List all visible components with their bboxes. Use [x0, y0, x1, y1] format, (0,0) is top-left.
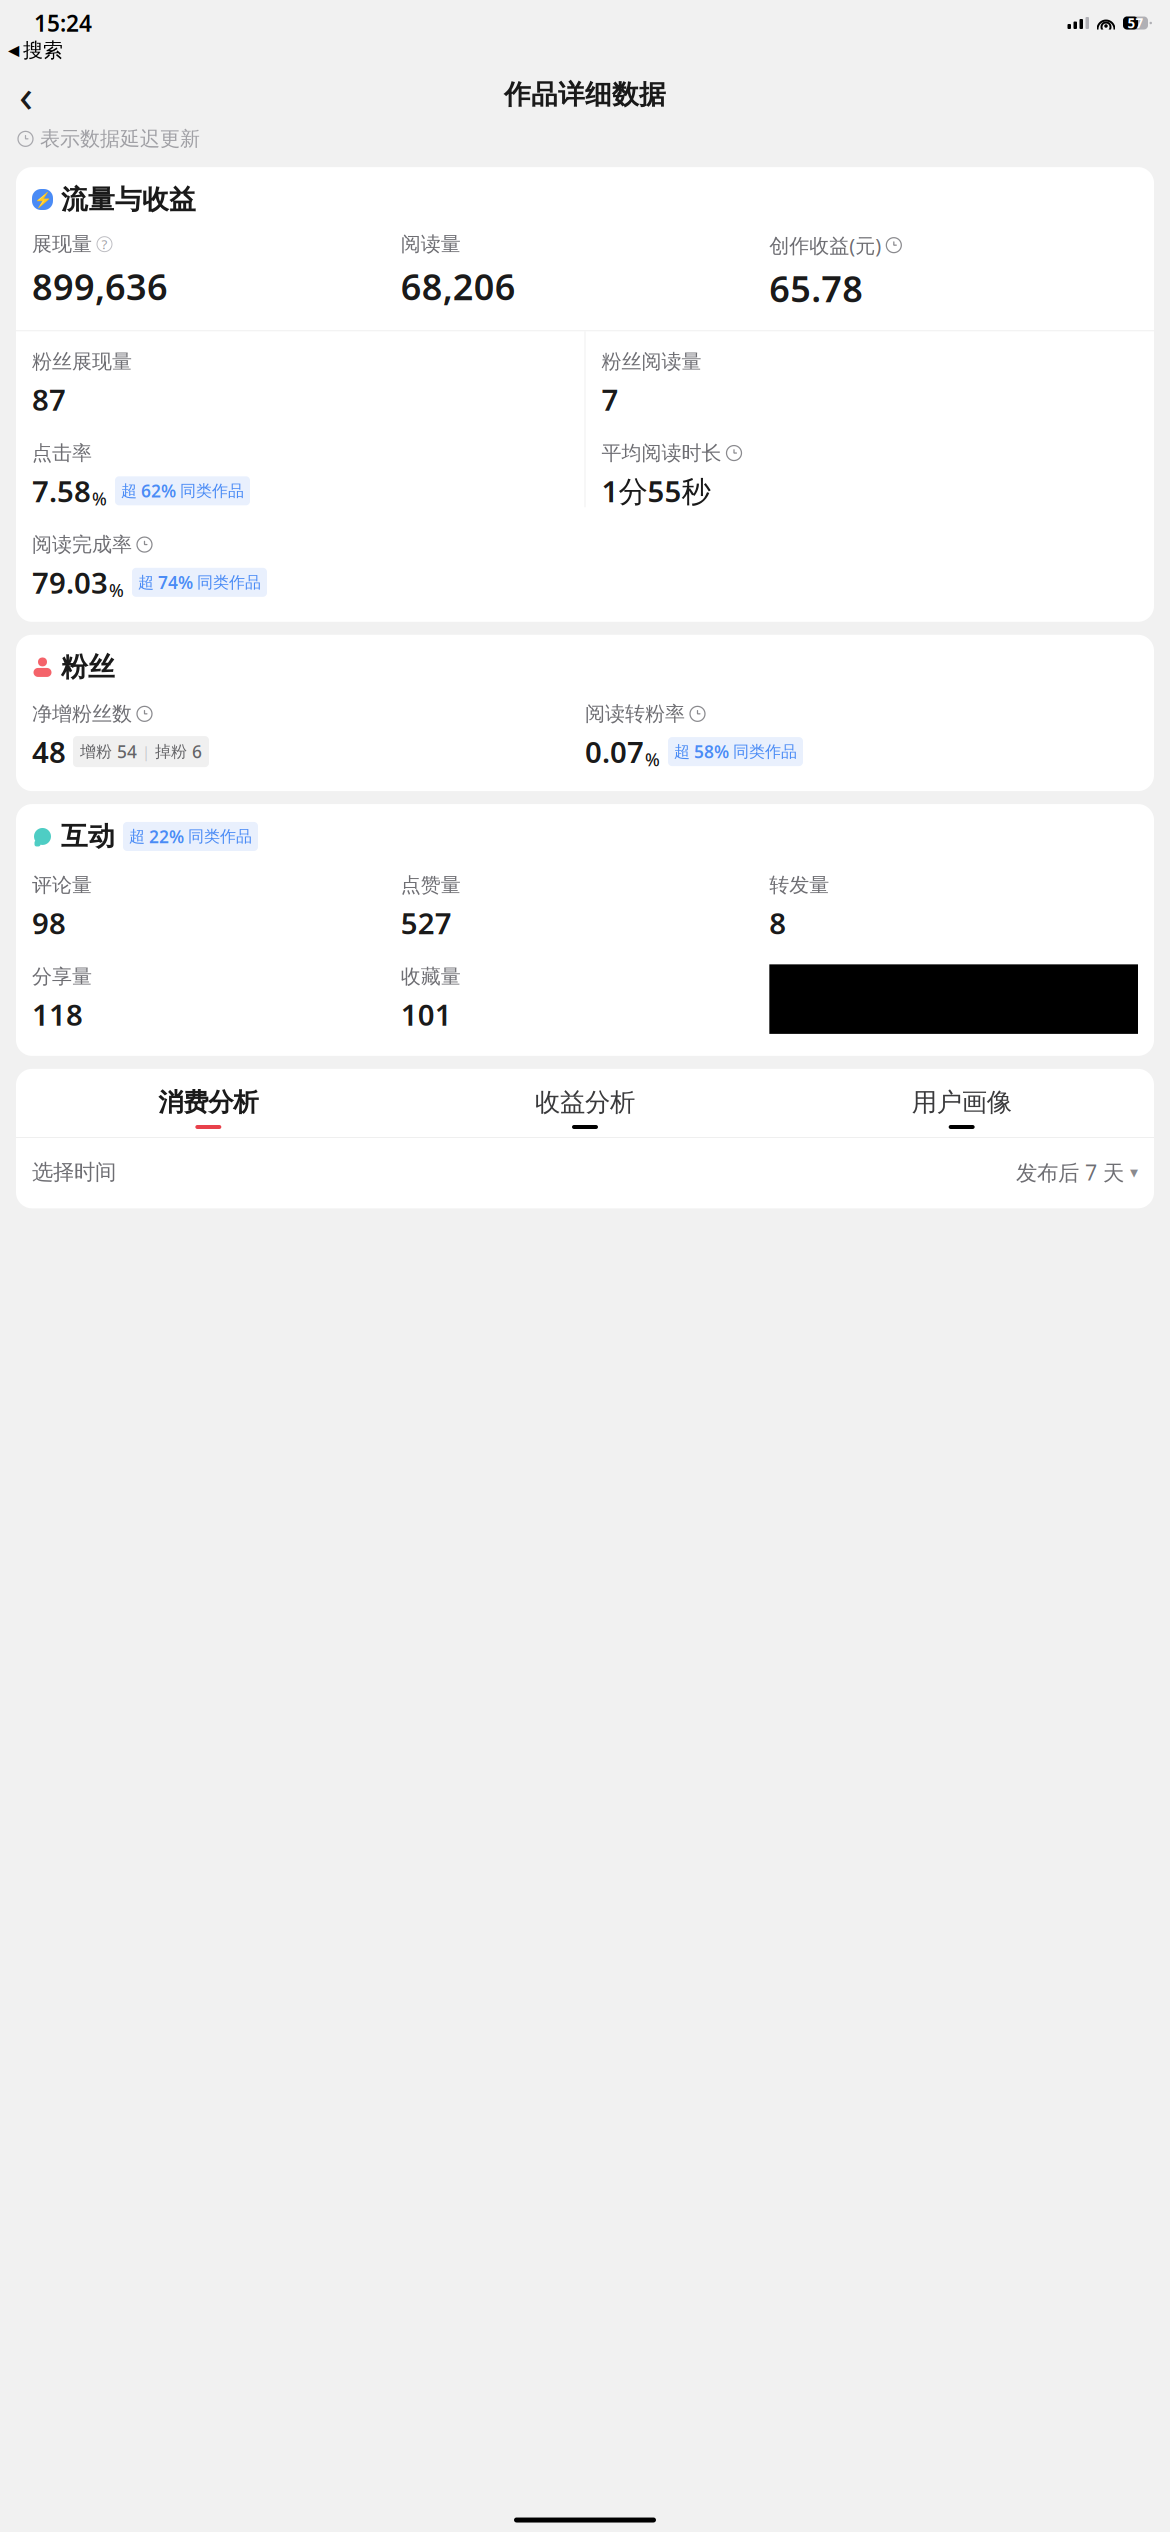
staticText: 展现量 — [32, 232, 92, 256]
staticText: 收藏量 — [401, 964, 461, 989]
staticText: 7 — [601, 380, 618, 419]
staticText: 掉粉 — [155, 742, 187, 761]
staticText: | — [142, 742, 150, 761]
staticText: 超 — [121, 481, 137, 501]
staticText: 7.58 — [32, 471, 91, 510]
staticText: 表示数据延迟更新 — [40, 127, 200, 151]
staticText: 粉丝展现量 — [32, 349, 132, 374]
staticText: 阅读完成率 — [32, 532, 132, 557]
staticText: 用户画像 — [912, 1087, 1012, 1118]
staticText: ⚡ — [33, 191, 51, 208]
staticText: 粉丝阅读量 — [601, 349, 701, 374]
staticText: 超 — [674, 742, 690, 761]
staticText: 超 — [129, 827, 145, 846]
staticText: 同类作品 — [188, 827, 252, 846]
staticText: 净增粉丝数 — [32, 702, 132, 726]
staticText: 68,206 — [401, 262, 516, 310]
staticText: 101 — [401, 995, 452, 1034]
button[interactable]: 返回 — [4, 73, 48, 117]
staticText: 消费分析 — [158, 1087, 258, 1118]
staticText: 54 — [117, 740, 137, 763]
staticText: 搜索 — [23, 38, 63, 63]
staticText: 118 — [32, 995, 83, 1034]
button[interactable]: 消费分析 — [20, 1087, 397, 1129]
staticText: ‹ — [19, 64, 33, 125]
staticText: 转发量 — [769, 873, 829, 897]
staticText: % — [645, 748, 660, 771]
staticText: 22% — [149, 825, 184, 848]
staticText: ◀ — [8, 42, 19, 59]
staticText: 平均阅读时长 — [601, 441, 721, 465]
staticText: 48 — [32, 732, 66, 771]
staticText: 互动 — [61, 820, 115, 853]
staticText: % — [92, 487, 107, 510]
staticText: 527 — [401, 903, 452, 942]
staticText: 阅读转粉率 — [585, 702, 685, 726]
button[interactable]: 用户画像 — [773, 1087, 1150, 1129]
staticText: 1分55秒 — [601, 471, 710, 510]
staticText: 57 — [1127, 14, 1143, 32]
staticText: 阅读量 — [401, 232, 461, 256]
staticText: 点击率 — [32, 441, 92, 465]
staticText: 0.07 — [585, 732, 644, 771]
staticText: 评论量 — [32, 873, 92, 897]
staticText: 收益分析 — [535, 1087, 635, 1118]
button[interactable]: ◀ — [0, 34, 1170, 63]
staticText: 同类作品 — [180, 481, 244, 501]
staticText: 选择时间 — [32, 1159, 116, 1185]
staticText: 同类作品 — [197, 572, 261, 592]
staticText: % — [109, 579, 124, 602]
staticText: 分享量 — [32, 964, 92, 989]
staticText: 作品详细数据 — [504, 78, 666, 111]
staticText: 58% — [694, 740, 729, 763]
staticText: 发布后 7 天 — [1016, 1158, 1124, 1186]
staticText: 98 — [32, 903, 66, 942]
staticText: ? — [101, 235, 107, 253]
staticText: ▾ — [1130, 1163, 1138, 1181]
staticText: 62% — [141, 479, 176, 502]
button[interactable]: 收益分析 — [397, 1087, 773, 1129]
staticText: 74% — [158, 571, 193, 594]
staticText: 超 — [138, 572, 154, 592]
staticText: 8 — [769, 903, 786, 942]
staticText: 65.78 — [769, 264, 863, 312]
staticText: 79.03 — [32, 563, 108, 602]
staticText: 流量与收益 — [61, 183, 196, 216]
button[interactable]: 选择时间 — [16, 1138, 1154, 1208]
staticText: 同类作品 — [733, 742, 797, 761]
staticText: 增粉 — [80, 742, 112, 761]
staticText: 粉丝 — [61, 651, 115, 684]
staticText: 899,636 — [32, 262, 168, 310]
staticText: 87 — [32, 380, 66, 419]
staticText: 点赞量 — [401, 873, 461, 897]
staticText: 15:24 — [34, 8, 92, 38]
staticText: 创作收益(元) — [769, 232, 881, 258]
staticText: 6 — [192, 740, 202, 763]
